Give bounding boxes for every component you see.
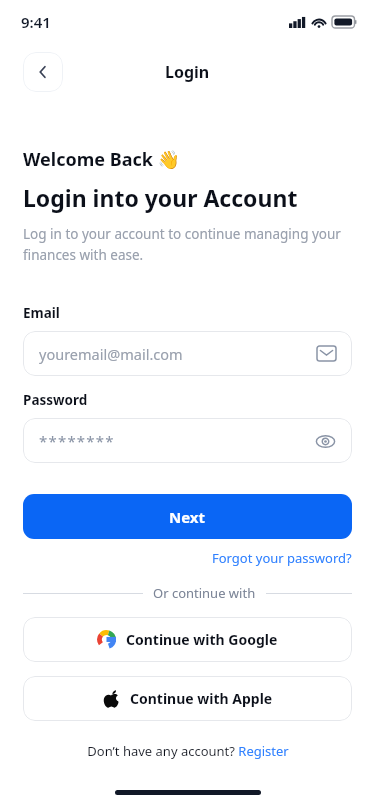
button[interactable]: Don’t have any account? Register [87, 742, 289, 760]
staticText: ******** [39, 431, 314, 451]
staticText: Password [23, 391, 88, 409]
staticText: youremail@mail.com [39, 344, 317, 364]
button[interactable]: Show password [314, 430, 336, 452]
button[interactable]: Forgot your password? [212, 549, 352, 567]
staticText: Or continue with [153, 584, 256, 602]
staticText: Log in to your account to continue manag… [23, 225, 352, 264]
staticText: Next [169, 507, 206, 527]
staticText: Login into your Account [23, 182, 298, 213]
staticText: Welcome Back 👋 [23, 147, 180, 172]
button[interactable]: Continue with Google [23, 617, 352, 662]
button[interactable]: ******** [23, 418, 352, 463]
staticText: Continue with Google [126, 630, 278, 649]
staticText: 9:41 [21, 12, 51, 32]
button[interactable]: Next [23, 494, 352, 539]
button[interactable]: Continue with Apple [23, 676, 352, 721]
staticText: Login [165, 61, 210, 83]
button[interactable]: youremail@mail.com [23, 331, 352, 376]
staticText: Email [23, 304, 60, 322]
staticText: Continue with Apple [130, 689, 273, 708]
button[interactable]: Back [23, 52, 63, 92]
